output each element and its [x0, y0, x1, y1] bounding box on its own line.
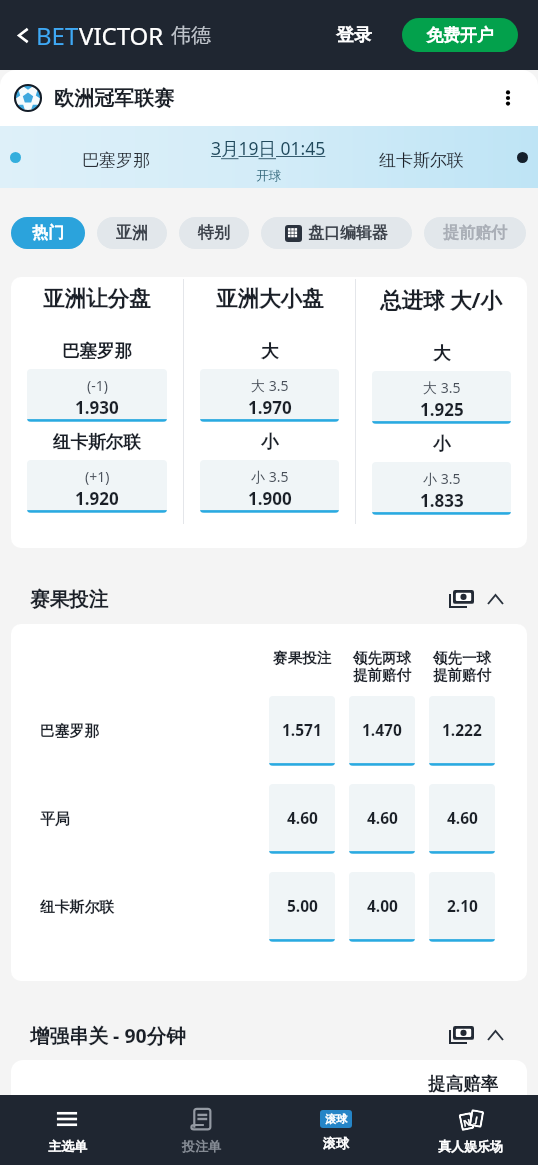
staticText: 大 3.5 [251, 376, 289, 395]
staticText: 大 3.5 [423, 378, 461, 397]
staticText: 提高赔率 [428, 1073, 498, 1095]
button[interactable]: 1.470 [349, 696, 415, 766]
staticText: 提前赔付 [443, 223, 507, 243]
button[interactable]: 登录 [332, 16, 376, 55]
button[interactable]: Collapse section [482, 586, 508, 612]
staticText: 1.222 [442, 719, 482, 740]
button[interactable]: 1.222 [429, 696, 495, 766]
staticText: 领先两球 提前赔付 [349, 649, 415, 684]
staticText: 登录 [336, 24, 372, 47]
button[interactable]: 热门 [11, 217, 85, 249]
staticText: 2.10 [447, 895, 478, 916]
staticText: 赛果投注 [30, 587, 108, 612]
button[interactable]: 免费开户 [402, 18, 518, 52]
button[interactable]: 亚洲 [97, 217, 167, 249]
staticText: J [474, 1113, 479, 1125]
staticText: 欧洲冠军联赛 [54, 86, 174, 111]
staticText: 热门 [32, 223, 64, 243]
staticText: 赛果投注 [269, 649, 335, 667]
staticText: 1.925 [420, 398, 464, 421]
staticText: 投注单 [182, 1138, 221, 1154]
button[interactable]: 2.10 [429, 872, 495, 942]
staticText: 领先一球 提前赔付 [429, 649, 495, 684]
staticText: 1.930 [75, 396, 119, 419]
button[interactable]: 4.60 [429, 784, 495, 854]
staticText: 开球 [256, 168, 281, 184]
button[interactable]: Collapse section [482, 1022, 508, 1048]
staticText: 4.00 [367, 895, 398, 916]
button[interactable]: 大 3.5 [372, 371, 511, 424]
button[interactable]: 特别 [179, 217, 249, 249]
staticText: 盘口编辑器 [308, 223, 388, 243]
button[interactable]: Cash out [446, 1020, 476, 1050]
staticText: 1.920 [75, 487, 119, 510]
staticText: 大 [261, 340, 279, 362]
staticText: 平局 [40, 810, 70, 829]
staticText: 伟德 [171, 23, 211, 48]
staticText: 4.60 [447, 807, 478, 828]
staticText: 小 3.5 [423, 469, 461, 488]
staticText: 小 [433, 433, 451, 455]
button[interactable]: 主选单 [0, 1095, 134, 1165]
button[interactable]: 1.571 [269, 696, 335, 766]
staticText: 滚球 [323, 1135, 349, 1151]
staticText: 小 3.5 [251, 467, 289, 486]
staticText: 1.833 [420, 489, 464, 512]
staticText: N [462, 1115, 472, 1129]
staticText: 4.60 [367, 807, 398, 828]
staticText: (-1) [87, 376, 108, 395]
button[interactable]: 4.00 [349, 872, 415, 942]
button[interactable]: 小 3.5 [372, 462, 511, 515]
staticText: 增强串关 - 90分钟 [30, 1022, 186, 1049]
staticText: 亚洲大小盘 [216, 285, 324, 312]
staticText: VICTOR [79, 19, 164, 52]
button[interactable]: 滚球 [268, 1095, 403, 1165]
button[interactable]: 4.60 [269, 784, 335, 854]
staticText: 1.571 [282, 719, 322, 740]
staticText: 亚洲 [116, 223, 148, 243]
staticText: 4.60 [287, 807, 318, 828]
button[interactable]: 大 3.5 [200, 369, 339, 422]
button[interactable]: More options [492, 82, 524, 114]
button[interactable]: 小 3.5 [200, 460, 339, 513]
staticText: (+1) [85, 467, 110, 486]
staticText: 5.00 [287, 895, 318, 916]
button[interactable]: (+1) [27, 460, 167, 513]
staticText: 总进球 大/小 [380, 285, 503, 314]
staticText: BET [36, 19, 79, 52]
staticText: 巴塞罗那 [82, 150, 150, 171]
button[interactable]: Cash out [446, 584, 476, 614]
button[interactable]: 5.00 [269, 872, 335, 942]
staticText: 1.970 [248, 396, 292, 419]
staticText: 1.900 [248, 487, 292, 510]
staticText: 特别 [198, 223, 230, 243]
staticText: 小 [261, 431, 279, 453]
button[interactable]: 盘口编辑器 [261, 217, 412, 249]
staticText: 真人娱乐场 [438, 1138, 503, 1154]
button[interactable]: 4.60 [349, 784, 415, 854]
button[interactable]: 提前赔付 [424, 217, 526, 249]
staticText: 1.470 [362, 719, 402, 740]
staticText: 免费开户 [426, 25, 494, 46]
button[interactable]: Back [10, 22, 36, 48]
staticText: 3月19日 01:45 [211, 136, 326, 160]
staticText: 巴塞罗那 [40, 722, 100, 741]
staticText: 纽卡斯尔联 [53, 431, 141, 453]
button[interactable]: (-1) [27, 369, 167, 422]
staticText: 巴塞罗那 [62, 340, 132, 362]
staticText: 纽卡斯尔联 [379, 150, 464, 171]
button[interactable]: 投注单 [134, 1095, 268, 1165]
staticText: 主选单 [48, 1138, 87, 1154]
staticText: 亚洲让分盘 [43, 285, 151, 312]
button[interactable]: N [403, 1095, 538, 1165]
staticText: 大 [433, 342, 451, 364]
staticText: 滚球 [325, 1112, 347, 1126]
staticText: 纽卡斯尔联 [40, 898, 114, 917]
